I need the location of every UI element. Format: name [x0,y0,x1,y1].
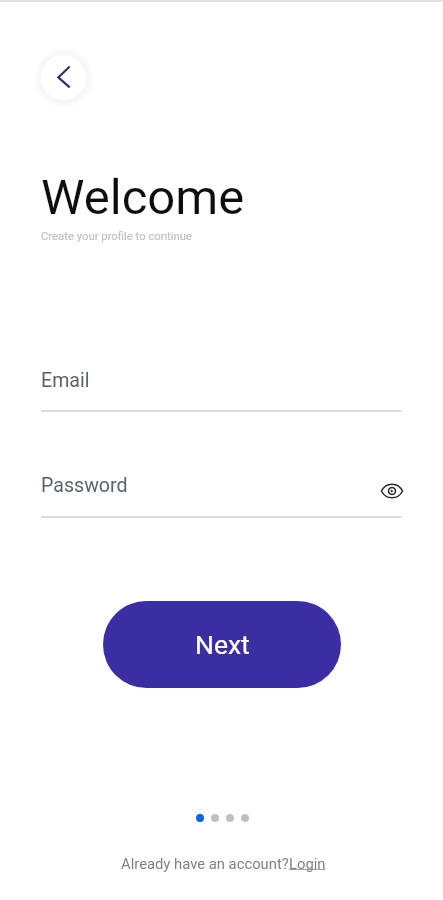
button[interactable]: Page 1 [196,814,204,822]
staticText: Already have an account? [121,855,289,872]
button[interactable]: Page 4 [241,814,249,822]
staticText: Create your profile to continue [41,230,192,243]
staticText: Next [195,629,250,660]
button[interactable]: Page 2 [211,814,219,822]
button[interactable]: Login [289,855,326,872]
staticText: Welcome [41,169,245,226]
staticText: Login [289,855,326,872]
button[interactable]: Back [41,55,86,100]
staticText: Password [41,474,128,497]
button[interactable]: Next [103,601,341,688]
button[interactable]: Page 3 [226,814,234,822]
button[interactable]: Email [41,356,402,412]
button[interactable]: Password [41,461,402,518]
button[interactable]: Show password [376,475,408,507]
staticText: Email [41,369,90,392]
